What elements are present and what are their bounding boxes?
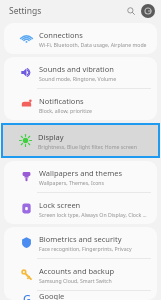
staticText: Accounts and backup — [39, 266, 115, 276]
button[interactable]: Sounds and vibration — [4, 57, 157, 89]
staticText: Google — [39, 291, 65, 300]
button[interactable]: Lock screen — [4, 193, 157, 224]
button[interactable]: Search — [123, 3, 138, 18]
staticText: Brightness, Blue light filter, Home scre… — [38, 143, 137, 150]
button[interactable]: Connections — [4, 23, 157, 54]
staticText: Samsung Cloud, Smart Switch — [39, 277, 112, 284]
staticText: Sounds and vibration — [39, 64, 114, 74]
staticText: Wi-Fi, Bluetooth, Data usage, Airplane m… — [39, 41, 147, 48]
staticText: Settings — [9, 5, 42, 17]
button[interactable]: G — [4, 291, 157, 300]
staticText: Screen lock type, Always On Display, Clo… — [39, 211, 148, 218]
button[interactable]: Accounts and backup — [4, 259, 157, 291]
button[interactable]: Wallpapers and themes — [4, 161, 157, 193]
button[interactable]: Display — [3, 125, 158, 156]
staticText: Face recognition, Fingerprints, Privacy — [39, 245, 132, 252]
button[interactable]: Display — [3, 125, 158, 156]
button[interactable]: Biometrics and security — [4, 227, 157, 259]
staticText: Lock screen — [39, 200, 81, 210]
staticText: Wallpapers, Themes, Icons — [39, 179, 104, 186]
staticText: Biometrics and security — [39, 234, 122, 244]
staticText: Notifications — [39, 96, 84, 106]
staticText: Connections — [39, 30, 83, 40]
staticText: Block, allow, prioritize — [39, 107, 92, 114]
button[interactable]: Notifications — [4, 89, 157, 120]
staticText: Display — [38, 132, 64, 142]
staticText: G — [23, 291, 31, 300]
button[interactable]: Profile — [141, 4, 155, 18]
staticText: Sound mode, Ringtone, Volume — [39, 75, 117, 82]
staticText: Wallpapers and themes — [39, 168, 123, 178]
